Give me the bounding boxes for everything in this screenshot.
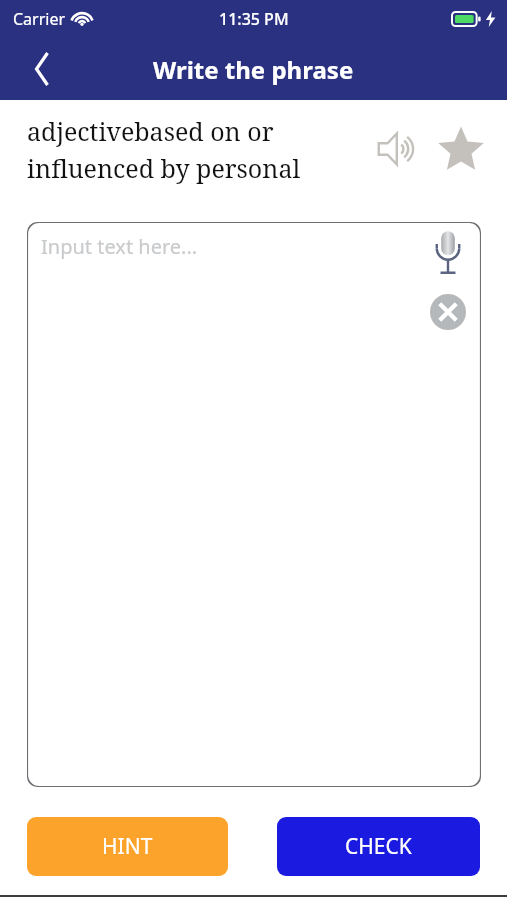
staticText: CHECK	[345, 832, 412, 861]
staticText: HINT	[102, 832, 153, 861]
staticText: 11:35 PM	[219, 8, 289, 30]
button[interactable]: Clear text	[426, 290, 470, 334]
button[interactable]: Play pronunciation	[373, 123, 425, 175]
staticText: Write the phrase	[153, 53, 354, 86]
staticText: Carrier	[13, 8, 66, 30]
button[interactable]: Back	[22, 47, 66, 91]
button[interactable]: Input text here...	[27, 222, 481, 787]
button[interactable]: Favorite	[435, 123, 487, 175]
button[interactable]: Voice input	[424, 228, 472, 276]
staticText: Input text here...	[41, 233, 198, 260]
button[interactable]: HINT	[27, 817, 228, 876]
button[interactable]: CHECK	[277, 817, 480, 876]
staticText: adjectivebased on or influenced by perso…	[27, 114, 357, 185]
